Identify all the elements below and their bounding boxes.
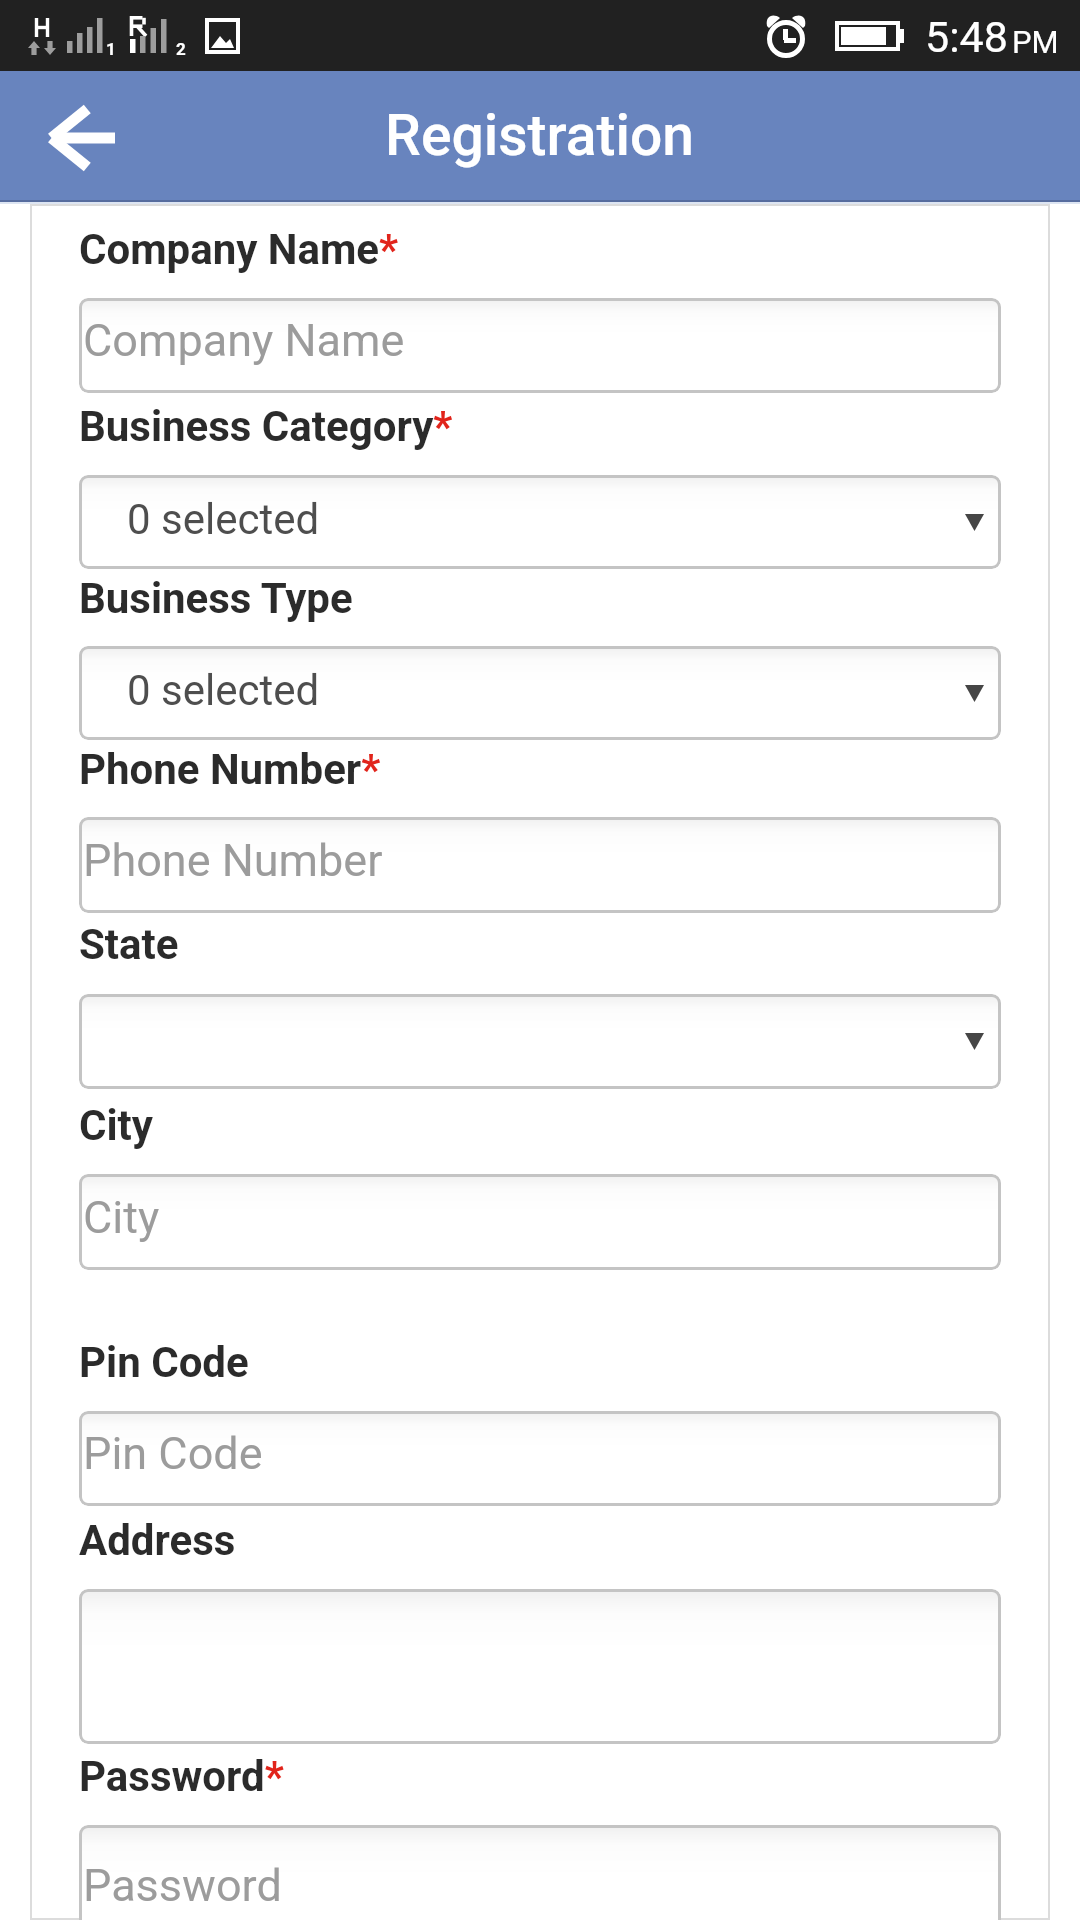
staticText: Business Category* <box>79 402 453 451</box>
staticText: Registration <box>385 102 695 169</box>
staticText: City <box>83 1191 160 1244</box>
staticText: Company Name* <box>79 225 399 274</box>
staticText: 2 <box>176 39 186 59</box>
staticText: Business Type <box>79 574 353 623</box>
staticText: Pin Code <box>83 1427 263 1480</box>
button[interactable]: City <box>79 1174 1001 1270</box>
staticText: Phone Number <box>83 834 383 887</box>
staticText: 5:48 <box>925 12 1008 62</box>
staticText: Pin Code <box>79 1338 249 1387</box>
staticText: Phone Number* <box>79 745 381 794</box>
button[interactable]: Pin Code <box>79 1411 1001 1506</box>
button[interactable]: Back <box>26 82 138 194</box>
staticText: City <box>79 1101 153 1150</box>
staticText: 0 selected <box>127 666 320 715</box>
staticText: 1 <box>106 39 116 59</box>
staticText: State <box>79 920 179 969</box>
button[interactable]: State <box>79 994 1001 1089</box>
button[interactable]: Phone Number <box>79 817 1001 913</box>
button[interactable]: Business Type <box>79 646 1001 740</box>
button[interactable]: Password <box>79 1825 1001 1920</box>
staticText: Password* <box>79 1752 284 1801</box>
staticText: Password <box>83 1859 282 1912</box>
staticText: Company Name <box>83 314 405 367</box>
staticText: PM <box>1012 24 1059 60</box>
staticText: Address <box>79 1516 236 1565</box>
button[interactable]: Address <box>79 1589 1001 1744</box>
button[interactable]: Company Name <box>79 298 1001 393</box>
button[interactable]: Business Category <box>79 475 1001 569</box>
staticText: 0 selected <box>127 495 320 544</box>
